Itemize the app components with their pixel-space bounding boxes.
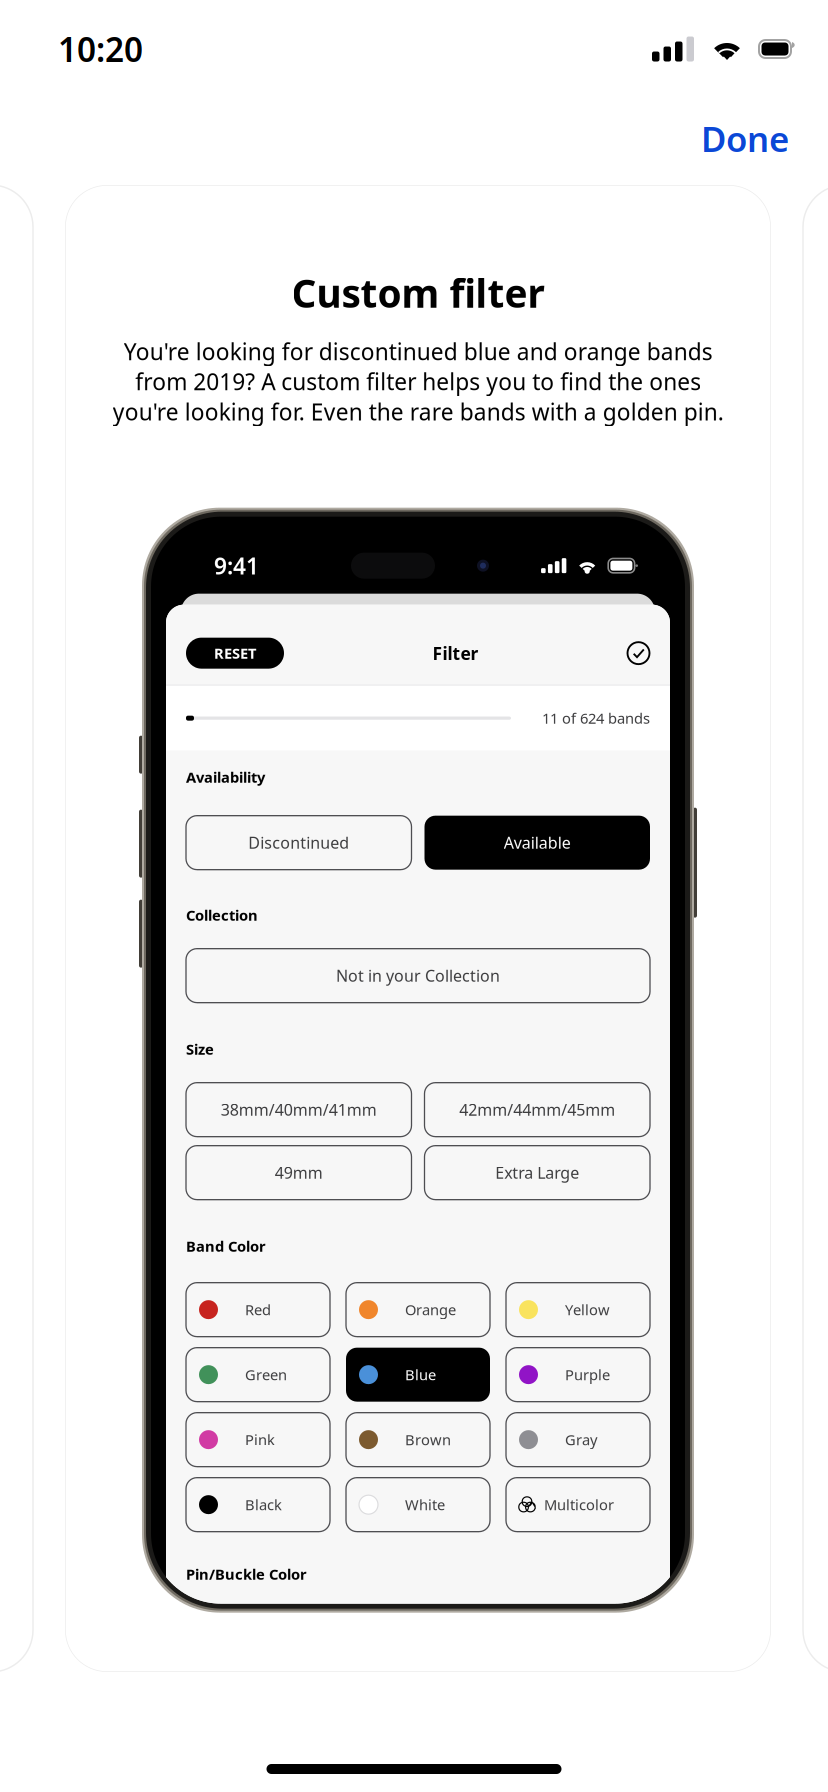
staticText: Done xyxy=(701,115,789,161)
staticText: 11 of 624 bands xyxy=(542,708,650,728)
button[interactable]: 38mm/40mm/41mm xyxy=(186,1083,411,1137)
button[interactable]: Multicolor xyxy=(506,1478,650,1532)
staticText: 49mm xyxy=(275,1162,323,1183)
staticText: Pink xyxy=(245,1430,275,1449)
staticText: RESET xyxy=(214,643,256,663)
button[interactable]: Gray xyxy=(506,1413,650,1467)
staticText: Green xyxy=(245,1365,287,1384)
staticText: Available xyxy=(504,832,571,853)
button[interactable]: Yellow xyxy=(506,1283,650,1337)
staticText: Availability xyxy=(186,767,265,787)
button[interactable]: Black xyxy=(186,1478,330,1532)
button[interactable]: Pink xyxy=(186,1413,330,1467)
staticText: 10:20 xyxy=(58,27,143,71)
button[interactable]: White xyxy=(346,1478,490,1532)
staticText: Black xyxy=(245,1495,282,1514)
staticText: Collection xyxy=(186,905,258,925)
staticText: You're looking for discontinued blue and… xyxy=(112,336,723,427)
staticText: Extra Large xyxy=(495,1162,579,1183)
staticText: 38mm/40mm/41mm xyxy=(221,1099,377,1120)
button[interactable]: Red xyxy=(186,1283,330,1337)
button[interactable]: Brown xyxy=(346,1413,490,1467)
button[interactable]: 42mm/44mm/45mm xyxy=(424,1083,650,1137)
button[interactable]: Blue xyxy=(346,1348,490,1402)
staticText: Red xyxy=(245,1300,271,1319)
button[interactable]: Not in your Collection xyxy=(186,949,650,1003)
button[interactable]: Green xyxy=(186,1348,330,1402)
button[interactable]: RESET xyxy=(186,638,284,669)
staticText: 42mm/44mm/45mm xyxy=(459,1099,615,1120)
staticText: Yellow xyxy=(565,1300,610,1319)
staticText: Gray xyxy=(565,1430,597,1449)
button[interactable]: Done xyxy=(685,108,805,174)
staticText: Custom filter xyxy=(291,267,544,318)
staticText: Band Color xyxy=(186,1236,266,1256)
staticText: Blue xyxy=(405,1365,436,1384)
button[interactable]: 49mm xyxy=(186,1146,411,1200)
staticText: Discontinued xyxy=(248,832,349,853)
staticText: Size xyxy=(186,1039,214,1059)
button[interactable]: Apply filter xyxy=(627,642,650,665)
button[interactable]: Available xyxy=(424,816,650,870)
staticText: Brown xyxy=(405,1430,451,1449)
button[interactable]: Purple xyxy=(506,1348,650,1402)
staticText: Orange xyxy=(405,1300,456,1319)
button[interactable]: Discontinued xyxy=(186,816,411,870)
staticText: Filter xyxy=(432,642,478,665)
staticText: Not in your Collection xyxy=(336,965,500,986)
button[interactable]: Extra Large xyxy=(424,1146,650,1200)
button[interactable]: Orange xyxy=(346,1283,490,1337)
staticText: White xyxy=(405,1495,445,1514)
staticText: Multicolor xyxy=(544,1495,614,1514)
staticText: 9:41 xyxy=(214,551,259,581)
staticText: Purple xyxy=(565,1365,610,1384)
staticText: Pin/Buckle Color xyxy=(186,1564,307,1584)
